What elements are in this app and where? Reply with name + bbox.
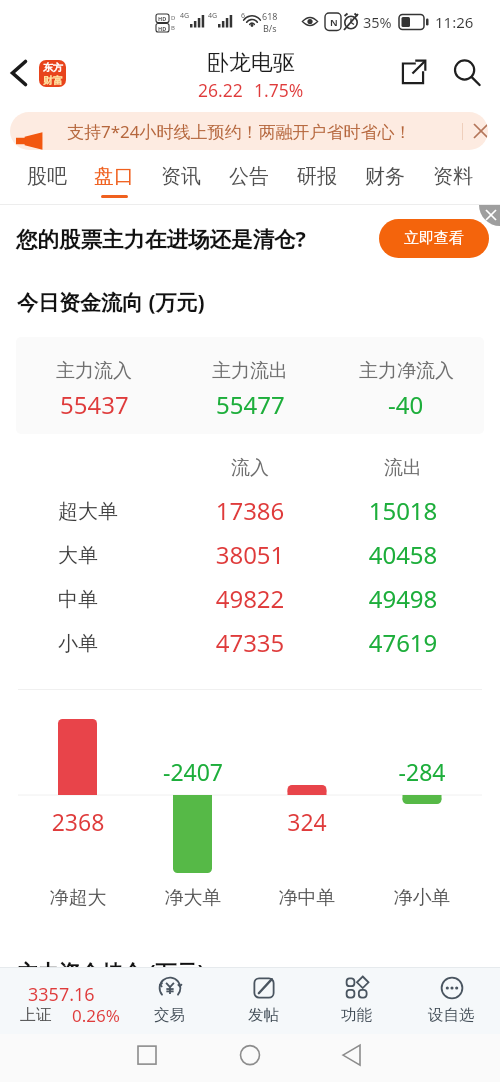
staticText: 15018 xyxy=(363,494,443,527)
staticText: 资讯 xyxy=(161,164,201,189)
staticText: N xyxy=(330,16,338,29)
staticText: 38051 xyxy=(210,538,290,571)
button[interactable]: Eastmoney home xyxy=(39,60,66,87)
button[interactable]: Back xyxy=(1,55,37,91)
staticText: 3357.16 xyxy=(28,982,95,1007)
staticText: 55437 xyxy=(60,388,129,421)
staticText: 小单 xyxy=(58,631,98,656)
staticText: 研报 xyxy=(297,164,337,189)
button[interactable]: 立即查看 xyxy=(379,219,489,258)
staticText: -284 xyxy=(372,756,472,787)
staticText: 发帖 xyxy=(248,1005,279,1025)
staticText: 26.22 xyxy=(198,78,243,102)
staticText: 35% xyxy=(363,12,392,32)
button[interactable]: Share xyxy=(392,52,434,94)
staticText: 1.75% xyxy=(254,78,304,102)
staticText: 2368 xyxy=(28,806,128,837)
staticText: 东方 xyxy=(43,61,63,74)
staticText: 17386 xyxy=(210,494,290,527)
staticText: 交易 xyxy=(154,1005,185,1025)
staticText: 流入 xyxy=(210,456,290,480)
staticText: HD xyxy=(158,15,167,22)
staticText: 上证 xyxy=(20,1005,52,1025)
button[interactable]: 支持7*24小时线上预约！两融开户省时省心！ xyxy=(10,112,488,150)
button[interactable]: 资料 xyxy=(419,152,487,205)
button[interactable]: 公告 xyxy=(215,152,283,205)
button[interactable]: Close ad xyxy=(479,205,500,226)
staticText: 0.26% xyxy=(72,1004,120,1027)
staticText: B/s xyxy=(263,22,277,34)
button[interactable]: 盘口 xyxy=(80,152,147,205)
staticText: 净大单 xyxy=(143,886,243,910)
button[interactable]: 发帖 xyxy=(230,970,296,1030)
staticText: 6 xyxy=(241,11,246,21)
button[interactable]: Search xyxy=(444,50,490,96)
button[interactable]: 资讯 xyxy=(147,152,215,205)
staticText: 40458 xyxy=(363,538,443,571)
button[interactable]: 中单 xyxy=(0,578,500,622)
staticText: 47335 xyxy=(210,626,290,659)
staticText: 净小单 xyxy=(372,886,472,910)
staticText: 324 xyxy=(257,806,357,837)
staticText: 卧龙电驱 xyxy=(207,49,295,77)
staticText: 资料 xyxy=(433,164,473,189)
staticText: 主力流入 xyxy=(56,359,132,383)
staticText: 49822 xyxy=(210,582,290,615)
staticText: 股吧 xyxy=(27,164,67,189)
button[interactable]: 大单 xyxy=(0,534,500,578)
staticText: -40 xyxy=(388,388,424,421)
staticText: 主力流出 xyxy=(212,359,288,383)
staticText: 净中单 xyxy=(257,886,357,910)
staticText: 流出 xyxy=(363,456,443,480)
button[interactable]: 设自选 xyxy=(418,970,484,1030)
staticText: 47619 xyxy=(363,626,443,659)
staticText: -2407 xyxy=(143,756,243,787)
staticText: 11:26 xyxy=(435,12,474,32)
staticText: 55477 xyxy=(216,388,285,421)
button[interactable]: 小单 xyxy=(0,622,500,666)
button[interactable]: 研报 xyxy=(283,152,351,205)
staticText: 财务 xyxy=(365,164,405,189)
staticText: 功能 xyxy=(341,1005,372,1025)
staticText: D xyxy=(171,14,176,22)
staticText: 49498 xyxy=(363,582,443,615)
button[interactable]: 功能 xyxy=(323,970,389,1030)
staticText: 立即查看 xyxy=(404,229,464,248)
staticText: 财富 xyxy=(43,74,63,87)
staticText: 4G xyxy=(208,11,218,21)
button[interactable]: 交易 xyxy=(136,970,202,1030)
button[interactable]: Close banner xyxy=(465,115,488,147)
staticText: 大单 xyxy=(58,543,98,568)
staticText: 超大单 xyxy=(58,499,118,524)
staticText: HD xyxy=(158,25,167,32)
button[interactable]: 股吧 xyxy=(13,152,80,205)
staticText: B xyxy=(171,24,175,32)
staticText: 主力资金持仓 (万元) xyxy=(17,958,205,987)
staticText: 今日资金流向 (万元) xyxy=(17,288,205,317)
staticText: 您的股票主力在进场还是清仓? xyxy=(16,224,306,253)
staticText: 公告 xyxy=(229,164,269,189)
button[interactable]: 超大单 xyxy=(0,490,500,534)
staticText: 净超大 xyxy=(28,886,128,910)
staticText: 支持7*24小时线上预约！两融开户省时省心！ xyxy=(67,120,412,143)
staticText: 618 xyxy=(262,10,278,22)
staticText: 主力净流入 xyxy=(359,359,454,383)
staticText: 设自选 xyxy=(428,1005,475,1025)
staticText: 4G xyxy=(180,11,190,21)
staticText: 盘口 xyxy=(94,164,134,189)
staticText: 中单 xyxy=(58,587,98,612)
button[interactable]: 财务 xyxy=(351,152,419,205)
